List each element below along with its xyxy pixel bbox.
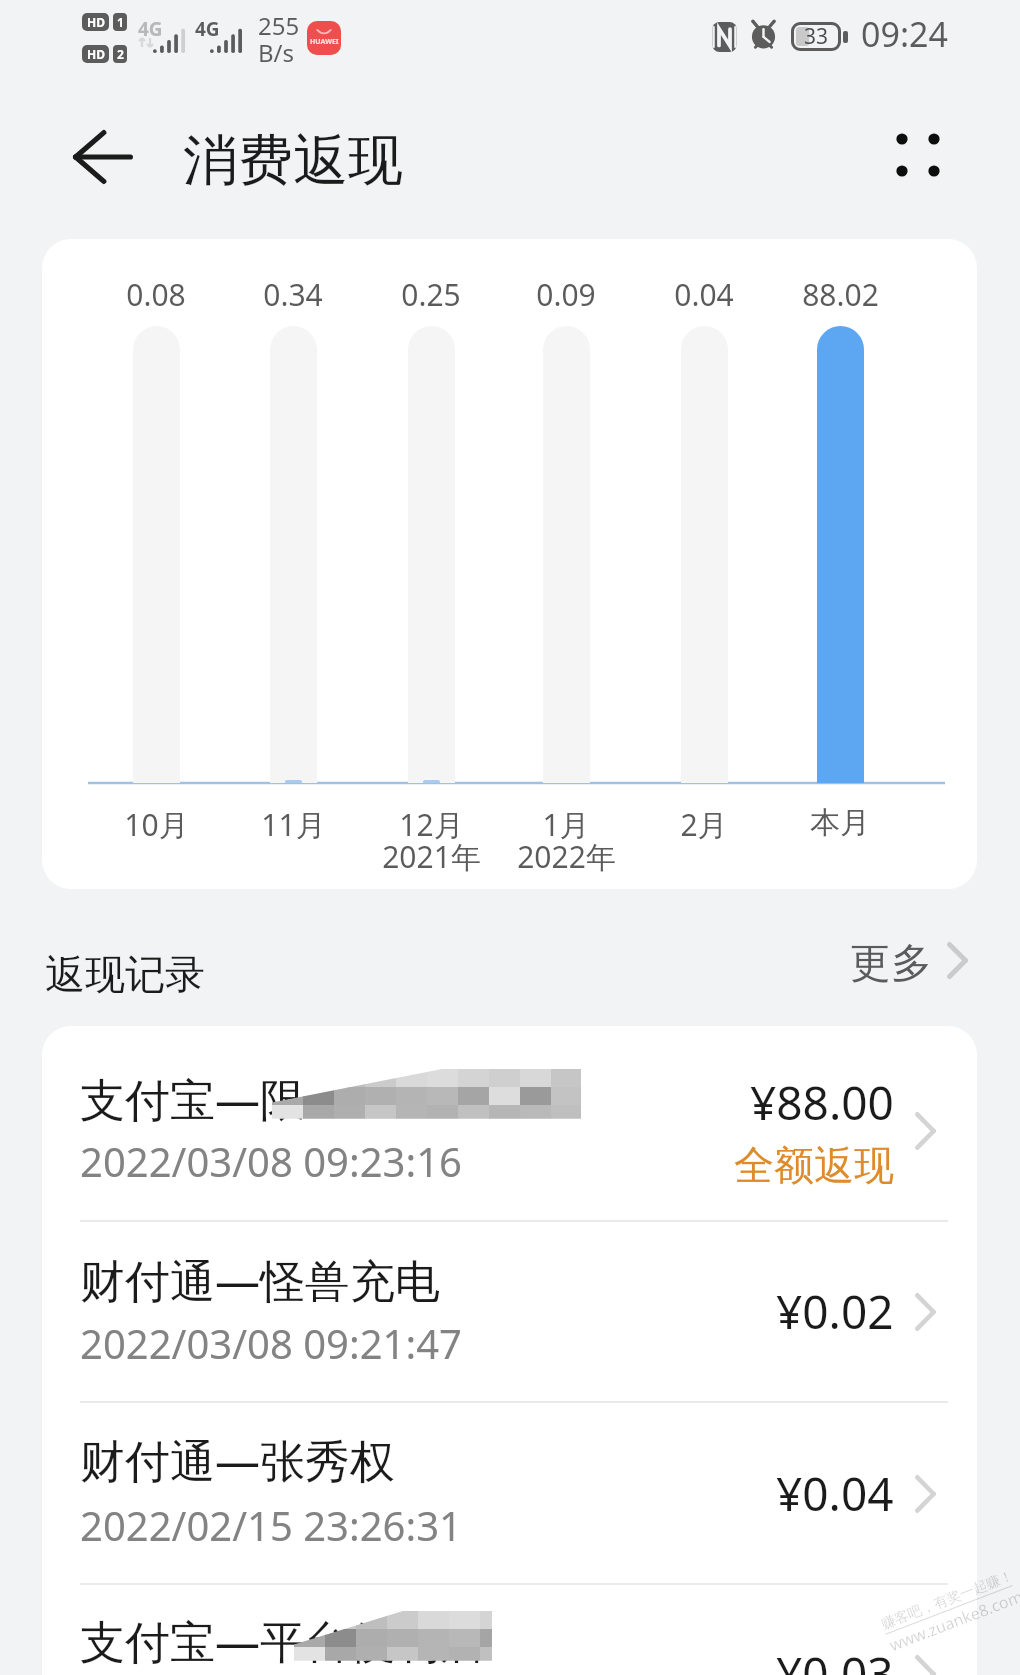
staticText: 255 bbox=[258, 9, 300, 42]
staticText: 赚客吧，有奖一起赚！ bbox=[879, 1567, 1016, 1634]
button[interactable]: Back bbox=[48, 102, 158, 212]
staticText: 88.02 bbox=[802, 274, 879, 315]
staticText: ¥88.00 bbox=[750, 1071, 894, 1134]
staticText: 2022/03/08 09:21:47 bbox=[80, 1316, 462, 1370]
button[interactable]: 支付宝—限… bbox=[42, 1026, 977, 1220]
staticText: 0.04 bbox=[674, 274, 734, 315]
staticText: 0.08 bbox=[126, 274, 186, 315]
staticText: B/s bbox=[258, 36, 295, 69]
button[interactable]: 财付通—张秀权 bbox=[42, 1401, 977, 1583]
staticText: HD bbox=[87, 46, 105, 62]
staticText: 支付宝—平台便利店 bbox=[80, 1610, 486, 1671]
staticText: 2021年 bbox=[382, 836, 481, 877]
staticText: 全额返现 bbox=[734, 1140, 894, 1190]
staticText: 支付宝—限… bbox=[80, 1068, 341, 1129]
staticText: 1月 bbox=[542, 804, 590, 845]
staticText: 消费返现 bbox=[183, 126, 403, 195]
staticText: HUAWEI bbox=[310, 37, 339, 47]
staticText: 1 bbox=[117, 14, 124, 30]
button[interactable]: 财付通—怪兽充电 bbox=[42, 1220, 977, 1401]
staticText: 4G bbox=[195, 16, 220, 42]
staticText: 0.34 bbox=[263, 274, 323, 315]
button[interactable]: 支付宝—平台便利店 bbox=[42, 1583, 977, 1675]
staticText: 2022/02/15 23:26:31 bbox=[80, 1498, 462, 1552]
staticText: 返现记录 bbox=[45, 949, 205, 999]
staticText: 2022/03/08 09:23:16 bbox=[80, 1134, 462, 1188]
staticText: 财付通—张秀权 bbox=[80, 1429, 396, 1490]
staticText: ¥0.02 bbox=[776, 1280, 894, 1343]
staticText: 2 bbox=[117, 46, 124, 62]
staticText: 2022年 bbox=[517, 836, 616, 877]
staticText: 本月 bbox=[810, 804, 870, 842]
staticText: 0.09 bbox=[536, 274, 596, 315]
button[interactable]: More options bbox=[870, 107, 966, 203]
staticText: 12月 bbox=[399, 804, 464, 845]
staticText: 4G bbox=[138, 16, 163, 42]
staticText: 10月 bbox=[124, 804, 189, 845]
staticText: 财付通—怪兽充电 bbox=[80, 1249, 441, 1310]
staticText: ¥0.04 bbox=[776, 1462, 894, 1525]
button[interactable]: 更多 bbox=[850, 934, 968, 986]
staticText: 09:24 bbox=[861, 11, 948, 57]
staticText: 33 bbox=[804, 22, 829, 51]
staticText: HD bbox=[87, 14, 105, 30]
staticText: 11月 bbox=[261, 804, 326, 845]
staticText: 0.25 bbox=[401, 274, 461, 315]
staticText: www.zuanke8.com bbox=[886, 1585, 1020, 1656]
staticText: ¥0.03 bbox=[776, 1642, 894, 1675]
staticText: 更多 bbox=[850, 938, 932, 990]
staticText: 2月 bbox=[680, 804, 728, 845]
